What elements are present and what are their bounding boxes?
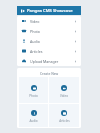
button[interactable]: Photo bbox=[17, 26, 81, 36]
staticText: Create New bbox=[40, 71, 59, 75]
button[interactable]: Video bbox=[49, 77, 79, 103]
button[interactable]: Video bbox=[17, 16, 81, 26]
staticText: Photo bbox=[30, 29, 41, 34]
button[interactable]: Photo bbox=[19, 77, 48, 103]
staticText: Audio bbox=[30, 39, 40, 44]
staticText: Upload Manager bbox=[30, 59, 59, 64]
staticText: Video bbox=[60, 94, 68, 98]
button[interactable]: Navigate up bbox=[19, 6, 27, 15]
button[interactable]: Upload Manager bbox=[17, 56, 81, 66]
button[interactable]: Audio bbox=[17, 36, 81, 46]
staticText: Pangea CMS Showcase bbox=[27, 8, 73, 14]
staticText: Video bbox=[30, 19, 40, 24]
staticText: Audio bbox=[29, 119, 38, 123]
staticText: Articles bbox=[59, 119, 70, 123]
button[interactable]: Audio bbox=[19, 104, 48, 127]
button[interactable]: Articles bbox=[17, 46, 81, 56]
button[interactable]: Articles bbox=[49, 104, 79, 127]
staticText: Articles bbox=[30, 49, 43, 54]
staticText: Photo bbox=[29, 94, 38, 98]
